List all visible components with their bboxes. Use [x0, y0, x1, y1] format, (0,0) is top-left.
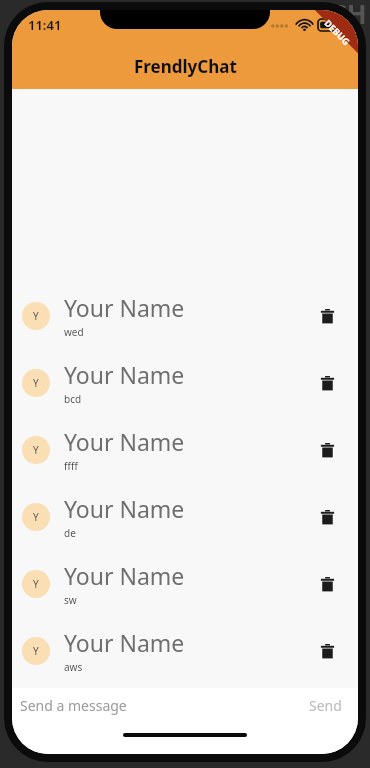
button[interactable]: Delete message	[310, 366, 344, 400]
staticText: Your Name	[64, 493, 185, 524]
staticText: Y	[33, 376, 39, 390]
button[interactable]: Delete message	[310, 299, 344, 333]
staticText: de	[64, 526, 76, 540]
staticText: aws	[64, 660, 83, 674]
staticText: Y	[33, 309, 39, 323]
staticText: Your Name	[64, 560, 185, 591]
staticText: Y	[33, 644, 39, 658]
staticText: sw	[64, 593, 77, 607]
staticText: 11:41	[28, 16, 62, 34]
staticText: ffff	[64, 459, 78, 473]
staticText: CH	[330, 0, 367, 31]
button[interactable]: Delete message	[310, 433, 344, 467]
staticText: FrendlyChat	[134, 55, 237, 78]
button[interactable]: Y	[12, 282, 358, 349]
button[interactable]: Delete message	[310, 500, 344, 534]
staticText: Your Name	[64, 359, 185, 390]
button[interactable]: Send	[301, 692, 350, 719]
button[interactable]: Y	[12, 617, 358, 684]
staticText: Send a message	[20, 696, 127, 715]
staticText: DEBUG	[322, 17, 353, 47]
button[interactable]: Delete message	[310, 567, 344, 601]
staticText: Your Name	[64, 426, 185, 457]
staticText: Y	[33, 510, 39, 524]
staticText: Your Name	[64, 627, 185, 658]
staticText: bcd	[64, 392, 82, 406]
button[interactable]: Y	[12, 483, 358, 550]
button[interactable]: Delete message	[310, 634, 344, 668]
button[interactable]: Y	[12, 349, 358, 416]
button[interactable]: Y	[12, 416, 358, 483]
button[interactable]: Send a message	[20, 696, 301, 715]
button[interactable]: Y	[12, 550, 358, 617]
staticText: Send	[309, 696, 342, 715]
staticText: Your Name	[64, 292, 185, 323]
staticText: Y	[33, 577, 39, 591]
staticText: Y	[33, 443, 39, 457]
staticText: wed	[64, 325, 84, 339]
